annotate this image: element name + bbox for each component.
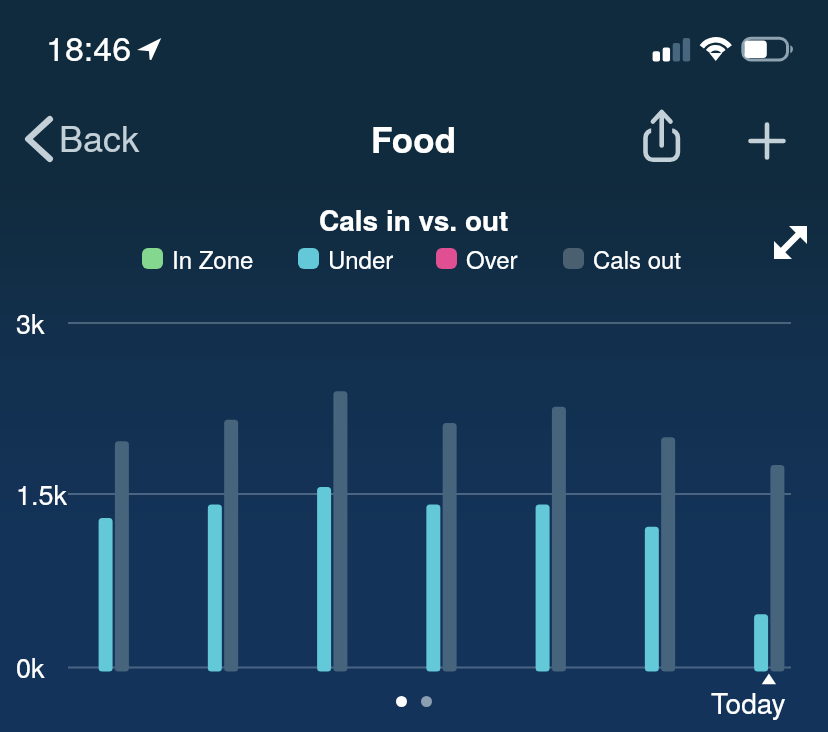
button[interactable]: Expand chart [756,208,824,276]
staticText: Under [328,241,394,275]
button[interactable]: Share [623,102,701,180]
staticText: Cals in vs. out [319,199,509,239]
staticText: Over [466,241,518,275]
staticText: 0k [16,647,45,686]
button[interactable]: In Zone [142,240,254,276]
button[interactable]: Cals out [563,240,682,276]
staticText: 18:46 [46,22,132,71]
staticText: Back [59,111,140,163]
button[interactable]: Back [0,93,158,185]
staticText: Cals out [593,241,682,275]
button[interactable]: Add [727,101,806,180]
staticText: In Zone [172,241,254,275]
staticText: 3k [16,303,45,342]
button[interactable]: Over [436,240,518,276]
staticText: Food [371,114,457,164]
button[interactable]: Under [298,240,394,276]
staticText: 1.5k [16,474,68,513]
staticText: Today [711,682,786,722]
